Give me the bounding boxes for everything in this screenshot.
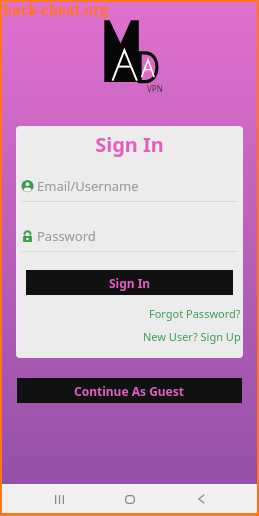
staticText: hack-cheat.org [3, 0, 109, 19]
staticText: Continue As Guest [74, 383, 185, 399]
button[interactable]: New User? Sign Up [16, 329, 241, 344]
button[interactable]: Back [184, 484, 218, 514]
button[interactable]: Sign In [26, 270, 233, 295]
staticText: Email/Username [37, 177, 139, 195]
staticText: New User? Sign Up [143, 329, 241, 344]
staticText: Sign In [109, 275, 151, 291]
button[interactable]: Recent apps [42, 484, 76, 514]
staticText: Sign In [16, 131, 243, 158]
staticText: Password [37, 227, 96, 245]
staticText: VPN [147, 83, 163, 94]
button[interactable]: Home [113, 484, 147, 514]
staticText: Forgot Password? [149, 306, 241, 321]
button[interactable]: Continue As Guest [17, 378, 242, 403]
button[interactable]: Forgot Password? [16, 306, 241, 321]
